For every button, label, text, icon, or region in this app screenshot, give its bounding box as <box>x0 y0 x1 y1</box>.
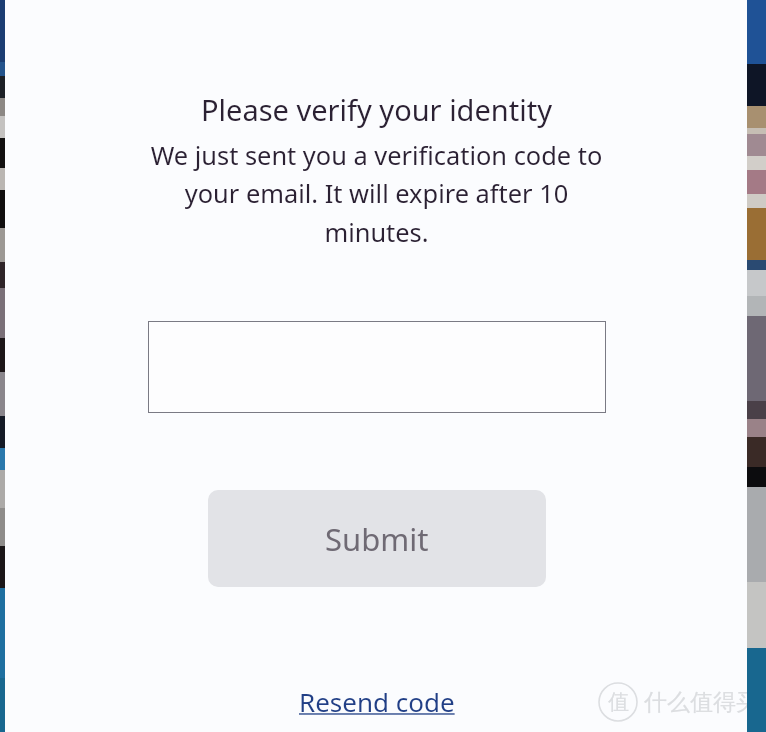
button[interactable]: Verification code <box>148 321 606 413</box>
staticText: 什么值得买 <box>644 688 747 717</box>
staticText: We just sent you a verification code to … <box>149 138 604 250</box>
staticText: 值 <box>608 689 629 715</box>
button[interactable]: Submit <box>208 490 546 587</box>
staticText: Submit <box>325 518 429 560</box>
staticText: Resend code <box>299 684 455 719</box>
button[interactable]: Resend code <box>293 674 461 729</box>
staticText: Please verify your identity <box>201 90 552 129</box>
